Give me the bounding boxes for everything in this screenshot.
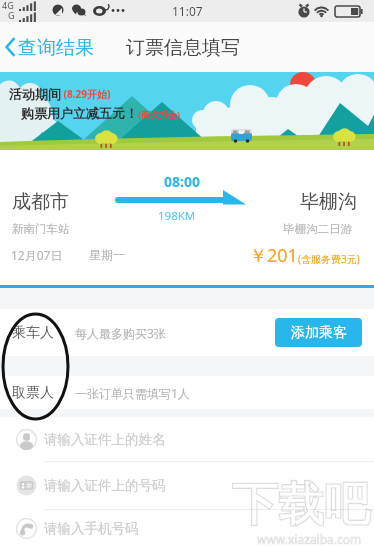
staticText: 新南门车站 xyxy=(12,222,70,236)
staticText: 11:07 xyxy=(172,3,203,19)
staticText: 每人最多购买3张 xyxy=(75,325,166,341)
button[interactable]: 查询结果 xyxy=(0,22,104,72)
staticText: www.xiazaiba.com xyxy=(257,531,362,547)
staticText: 查询结果 xyxy=(18,36,94,60)
staticText: ￥201 xyxy=(249,243,298,268)
staticText: (含服务费3元) xyxy=(298,252,360,266)
staticText: 请输入证件上的号码 xyxy=(44,477,166,494)
staticText: 下载吧 xyxy=(232,476,370,534)
staticText: 12月07日 xyxy=(11,247,63,263)
staticText: 请输入证件上的姓名 xyxy=(44,431,166,448)
staticText: 毕棚沟 xyxy=(300,190,357,214)
button[interactable]: 取票人 xyxy=(0,376,374,409)
button[interactable]: 添加乘客 xyxy=(275,318,362,347)
staticText: 活动期间 xyxy=(9,86,61,102)
button[interactable]: 乘车人 xyxy=(0,309,374,356)
staticText: 08:00 xyxy=(164,172,200,191)
staticText: 星期一 xyxy=(89,247,125,262)
button[interactable]: 请输入证件上的号码 xyxy=(0,462,374,509)
staticText: G xyxy=(8,9,15,21)
staticText: 添加乘客 xyxy=(291,324,347,342)
button[interactable]: 请输入证件上的姓名 xyxy=(0,417,374,461)
button[interactable]: 请输入手机号码 xyxy=(0,510,374,547)
staticText: 购票用户立减五元！ xyxy=(21,105,138,121)
staticText: 毕棚沟二日游 xyxy=(283,222,352,236)
staticText: 一张订单只需填写1人 xyxy=(75,385,190,401)
staticText: 乘车人 xyxy=(12,324,54,342)
staticText: 4G xyxy=(2,0,14,11)
staticText: (8.29开始) xyxy=(61,87,111,101)
staticText: 成都市 xyxy=(12,190,69,214)
staticText: 取票人 xyxy=(12,384,54,402)
staticText: 订票信息填写 xyxy=(126,36,240,60)
staticText: 198KM xyxy=(158,208,196,224)
staticText: 请输入手机号码 xyxy=(44,520,139,537)
staticText: (商次拟会) xyxy=(138,108,181,120)
